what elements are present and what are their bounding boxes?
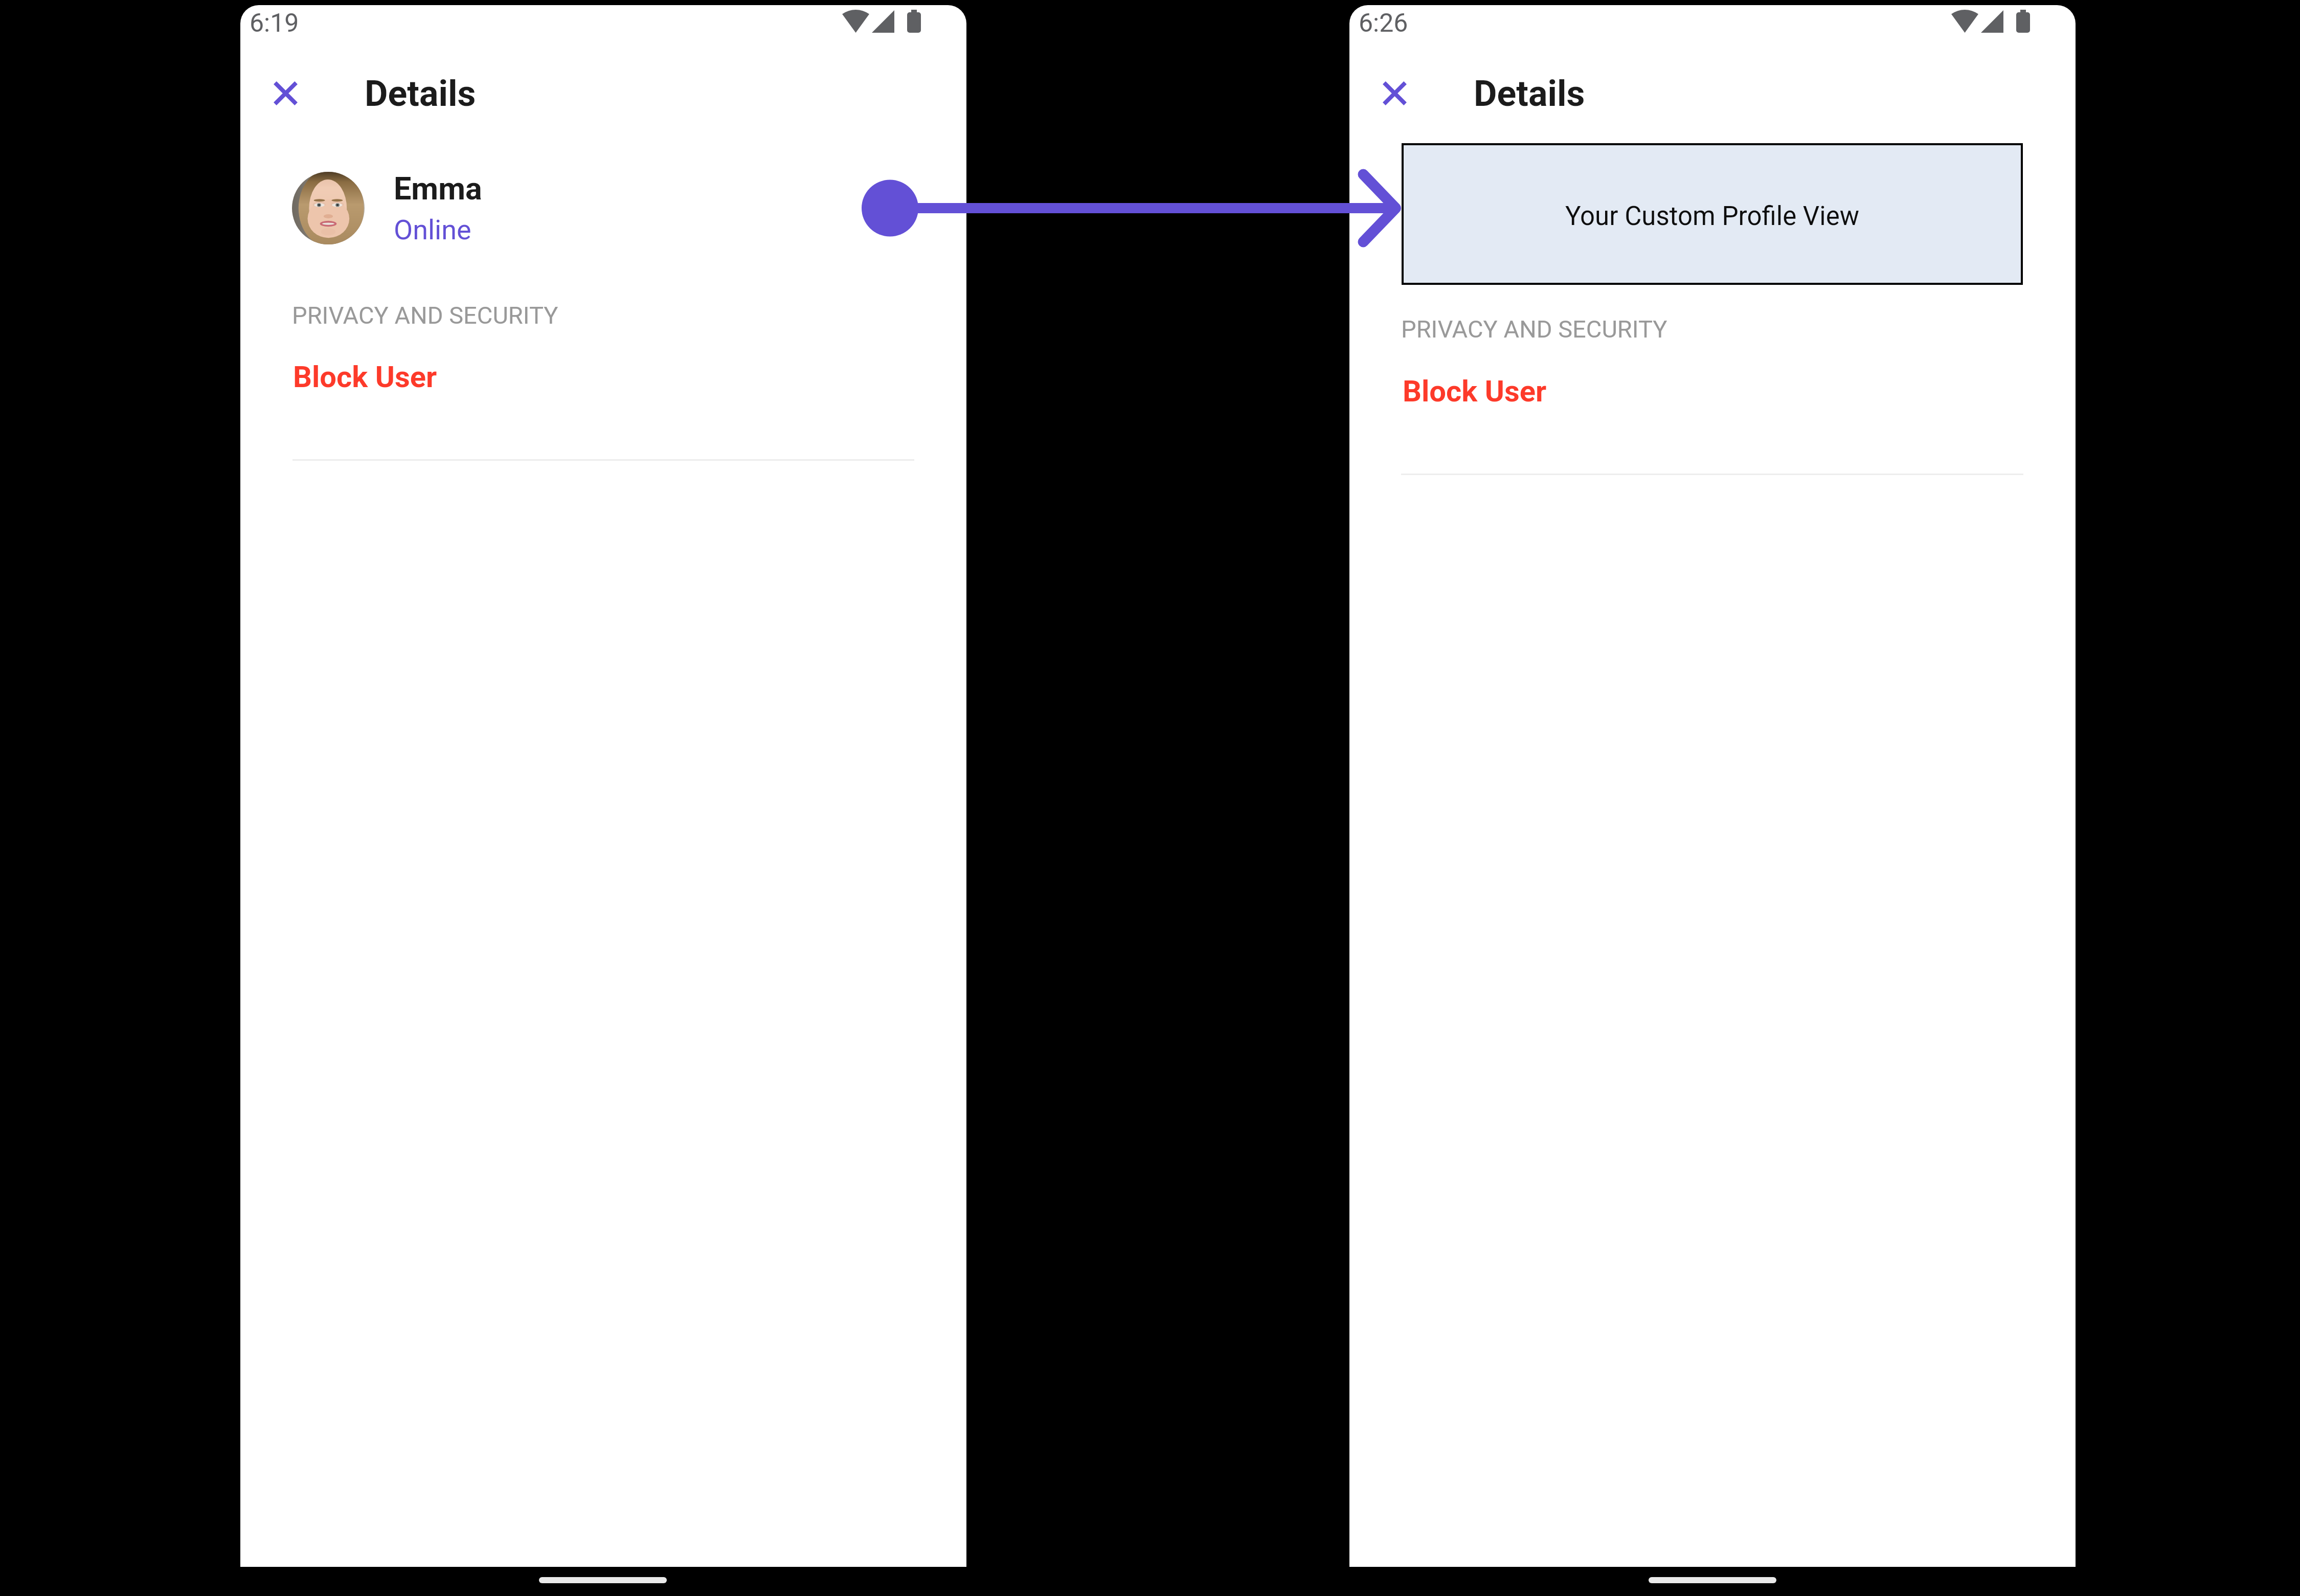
button[interactable]: Block User <box>1349 364 2076 406</box>
staticText: Block User <box>1403 374 1547 406</box>
staticText: 6:26 <box>1359 8 1408 38</box>
staticText: Online <box>394 214 471 246</box>
staticText: 6:19 <box>250 8 299 38</box>
staticText: Your Custom Profile View <box>1565 201 1860 232</box>
staticText: PRIVACY AND SECURITY <box>1401 315 1667 343</box>
staticText: PRIVACY AND SECURITY <box>292 301 558 329</box>
staticText: Emma <box>394 170 482 207</box>
button[interactable]: Close <box>1375 74 1414 113</box>
button[interactable]: Your Custom Profile View <box>1402 143 2023 285</box>
staticText: Details <box>1474 73 1585 115</box>
staticText: Details <box>365 73 476 115</box>
button[interactable]: Block User <box>240 350 966 392</box>
button[interactable]: Emma <box>240 167 966 250</box>
button[interactable]: Close <box>266 74 305 113</box>
staticText: Block User <box>293 359 437 392</box>
